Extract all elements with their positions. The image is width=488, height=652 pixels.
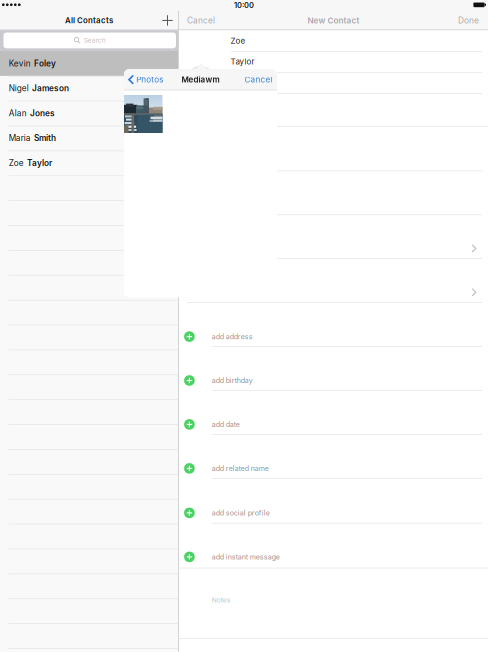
button[interactable]: Zoe xyxy=(0,51,178,652)
button[interactable]: Maria xyxy=(0,51,178,652)
staticText: add instant message xyxy=(212,553,280,561)
staticText: add social profile xyxy=(212,509,270,517)
button[interactable]: Done xyxy=(179,11,488,30)
staticText: All Contacts xyxy=(65,16,113,25)
staticText: Alan xyxy=(9,108,27,118)
staticText: add date xyxy=(212,420,240,429)
button[interactable]: Photo xyxy=(124,69,277,297)
staticText: add related name xyxy=(212,464,269,473)
staticText: Zoe xyxy=(9,158,24,168)
staticText: Photos xyxy=(136,75,163,84)
staticText: Taylor xyxy=(231,57,255,66)
staticText: add address xyxy=(212,332,253,341)
staticText: Nigel xyxy=(9,83,29,93)
staticText: add xyxy=(196,73,205,80)
button[interactable]: Add photo xyxy=(186,66,215,95)
staticText: Smith xyxy=(34,133,56,143)
button[interactable]: Kevin xyxy=(0,51,178,652)
staticText: Taylor xyxy=(27,158,52,168)
staticText: Cancel xyxy=(187,15,215,25)
staticText: Zoe xyxy=(231,36,246,46)
staticText: 10:00 xyxy=(234,1,254,10)
staticText: Search xyxy=(84,36,106,44)
button[interactable]: Alan xyxy=(0,51,178,652)
staticText: Cancel xyxy=(244,75,272,84)
staticText: Jones xyxy=(30,108,55,118)
staticText: Notes xyxy=(212,596,231,604)
staticText: Done xyxy=(458,15,479,25)
button[interactable]: Cancel xyxy=(124,69,277,90)
staticText: add birthday xyxy=(212,376,253,385)
staticText: Jameson xyxy=(32,83,69,93)
staticText: Foley xyxy=(34,58,56,68)
staticText: photo xyxy=(194,80,208,87)
button[interactable]: Photos xyxy=(124,69,277,90)
button[interactable]: Nigel xyxy=(0,51,178,652)
button[interactable]: Add contact xyxy=(0,11,178,30)
staticText: Kevin xyxy=(9,58,31,68)
staticText: New Contact xyxy=(307,15,359,25)
staticText: Maria xyxy=(9,133,31,143)
staticText: Company xyxy=(231,78,267,87)
staticText: Mediawm xyxy=(181,75,219,84)
button[interactable]: Cancel xyxy=(179,11,488,30)
